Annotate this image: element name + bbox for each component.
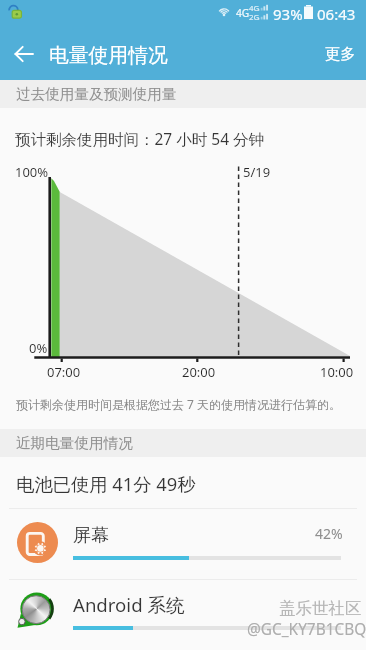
staticText: 10:00	[320, 363, 354, 381]
staticText: 100%	[15, 163, 49, 181]
staticText: 4G	[249, 3, 260, 14]
staticText: 06:43	[317, 4, 356, 24]
button[interactable]: Android 系统	[0, 580, 366, 650]
staticText: 过去使用量及预测使用量	[16, 85, 177, 103]
staticText: 屏幕	[73, 524, 109, 547]
staticText: 更多	[325, 44, 356, 63]
staticText: 5/19	[243, 163, 271, 181]
staticText: 20:00	[182, 363, 216, 381]
staticText: 盖乐世社区	[279, 598, 362, 619]
staticText: 电池已使用 41分 49秒	[16, 471, 196, 496]
staticText: 4G	[236, 6, 250, 20]
staticText: 预计剩余使用时间是根据您过去 7 天的使用情况进行估算的。	[16, 396, 342, 412]
staticText: 93%	[273, 4, 303, 24]
staticText: 07:00	[47, 363, 81, 381]
button[interactable]: 更多	[317, 36, 364, 71]
button[interactable]: Back	[8, 38, 40, 70]
staticText: 电量使用情况	[49, 43, 168, 68]
staticText: 2G	[249, 12, 260, 23]
staticText: Android 系统	[73, 592, 185, 617]
staticText: 42%	[315, 524, 343, 543]
staticText: @GC_KY7B1CBQ	[247, 619, 366, 640]
staticText: 0%	[29, 339, 48, 357]
staticText: 预计剩余使用时间：27 小时 54 分钟	[15, 128, 265, 149]
button[interactable]: 屏幕	[0, 509, 366, 579]
staticText: 近期电量使用情况	[16, 434, 133, 452]
